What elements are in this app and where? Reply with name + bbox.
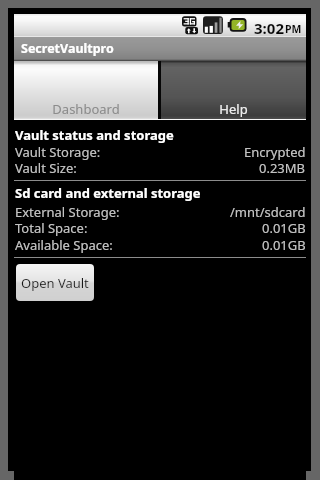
button[interactable]: Dashboard — [14, 61, 158, 120]
staticText: Sd card and external storage — [15, 184, 201, 202]
staticText: 0.01GB — [262, 236, 306, 254]
staticText: PM — [285, 22, 302, 36]
staticText: 0.23MB — [259, 159, 306, 177]
staticText: Vault Storage: — [15, 143, 101, 161]
staticText: Encrypted — [244, 143, 306, 161]
button[interactable]: Help — [161, 61, 306, 120]
staticText: Dashboard — [14, 100, 158, 118]
staticText: Vault status and storage — [15, 126, 174, 144]
staticText: 3:02 — [254, 18, 284, 38]
staticText: 0.01GB — [262, 219, 306, 237]
staticText: SecretVaultpro — [21, 40, 114, 57]
staticText: External Storage: — [15, 203, 120, 221]
staticText: Help — [161, 100, 306, 118]
staticText: Total Space: — [15, 219, 88, 237]
staticText: Open Vault — [21, 274, 89, 292]
staticText: Vault Size: — [15, 159, 77, 177]
staticText: Available Space: — [15, 236, 113, 254]
staticText: /mnt/sdcard — [230, 203, 306, 221]
button[interactable]: Open Vault — [16, 264, 94, 301]
